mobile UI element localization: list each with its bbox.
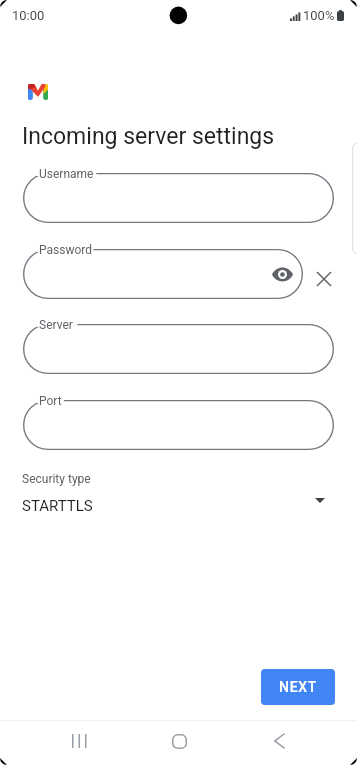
button[interactable]: Show password (268, 260, 296, 288)
staticText: STARTTLS (22, 497, 93, 515)
button[interactable]: Recents (57, 719, 101, 763)
button[interactable]: Back (257, 719, 301, 763)
staticText: Incoming server settings (22, 123, 275, 150)
staticText: Username (39, 167, 94, 181)
button[interactable]: NEXT (261, 669, 335, 705)
button[interactable]: Clear password (309, 264, 338, 293)
button[interactable]: Home (157, 719, 201, 763)
staticText: Port (39, 394, 62, 408)
staticText: 100% (303, 8, 335, 23)
staticText: Security type (22, 472, 91, 486)
staticText: NEXT (279, 679, 318, 695)
staticText: 10:00 (12, 8, 45, 23)
staticText: Server (39, 318, 73, 332)
staticText: Password (39, 243, 93, 257)
button[interactable]: STARTTLS (0, 492, 357, 520)
